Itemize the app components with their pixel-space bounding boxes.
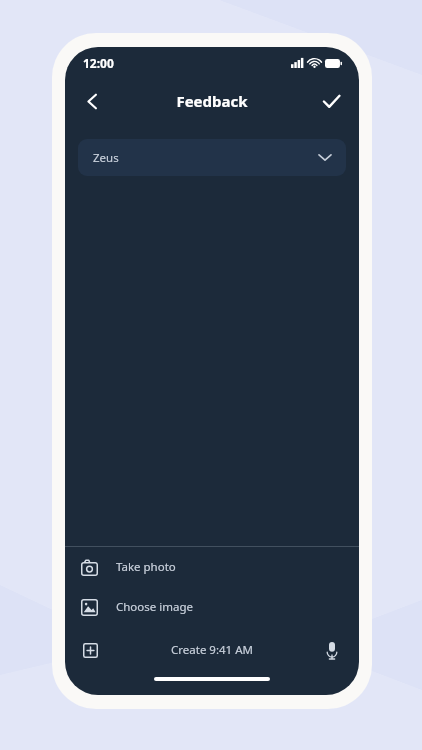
button[interactable]: Voice input <box>315 633 349 667</box>
staticText: Take photo <box>116 559 176 575</box>
staticText: Feedback <box>176 91 248 111</box>
staticText: 12:00 <box>83 55 114 71</box>
button[interactable]: Add <box>73 633 107 667</box>
button[interactable]: Zeus <box>78 139 346 176</box>
staticText: Create 9:41 AM <box>171 642 253 658</box>
staticText: Zeus <box>93 150 119 166</box>
staticText: Choose image <box>116 599 194 615</box>
button[interactable]: Take photo <box>65 547 359 587</box>
button[interactable]: Back <box>71 80 113 122</box>
button[interactable]: Choose image <box>65 587 359 627</box>
button[interactable]: Save <box>310 80 352 122</box>
